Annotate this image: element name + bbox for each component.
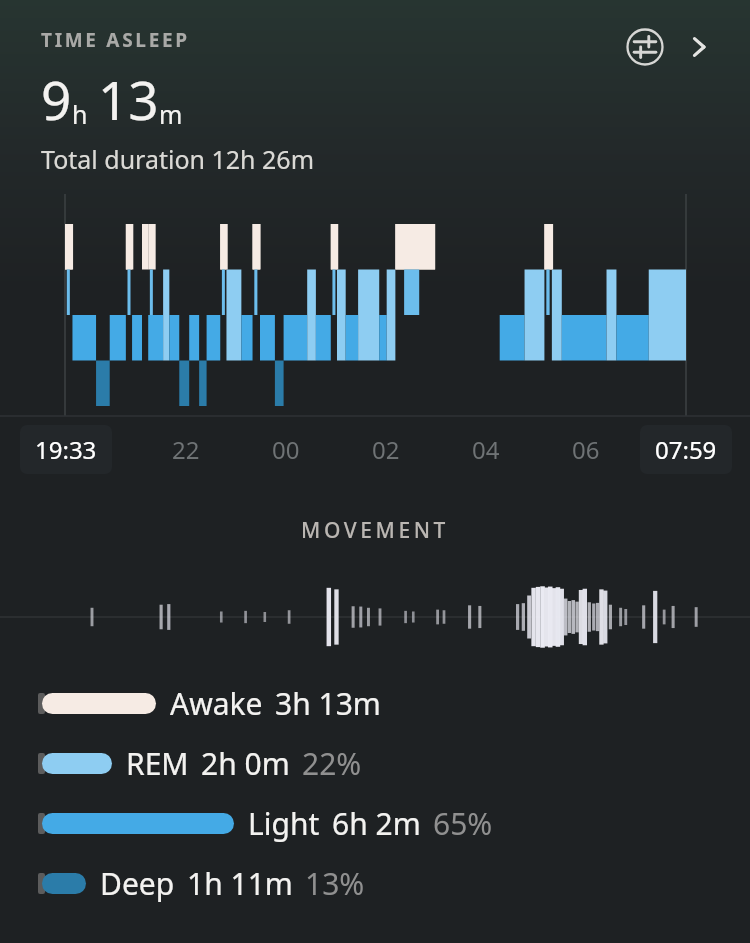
button[interactable]: Light	[38, 803, 750, 844]
staticText: TIME ASLEEP	[41, 27, 190, 53]
staticText: 65%	[433, 803, 493, 844]
button[interactable]: REM	[38, 743, 750, 784]
staticText: 2h 0m	[201, 743, 290, 784]
staticText: 07:59	[655, 433, 717, 466]
staticText: 00	[272, 433, 300, 466]
staticText: 19:33	[35, 433, 97, 466]
button[interactable]: Open sleep details	[674, 22, 724, 72]
staticText: REM	[126, 743, 189, 784]
staticText: Light	[248, 803, 320, 844]
staticText: 06	[572, 433, 600, 466]
staticText: 13%	[305, 863, 365, 904]
staticText: h	[72, 97, 88, 131]
staticText: 04	[472, 433, 500, 466]
button[interactable]: Sleep settings	[620, 22, 670, 72]
staticText: 1h 11m	[187, 863, 293, 904]
staticText: 02	[372, 433, 400, 466]
button[interactable]: Awake	[38, 683, 750, 724]
staticText: 13	[98, 63, 159, 135]
button[interactable]: Deep	[38, 863, 750, 904]
staticText: Awake	[170, 683, 263, 724]
staticText: Total duration 12h 26m	[41, 142, 315, 176]
staticText: 22%	[302, 743, 362, 784]
staticText: 6h 2m	[332, 803, 421, 844]
staticText: 3h 13m	[275, 683, 381, 724]
staticText: 22	[172, 433, 200, 466]
staticText: Deep	[100, 863, 175, 904]
staticText: MOVEMENT	[301, 516, 450, 545]
staticText: 9	[41, 63, 72, 135]
staticText: m	[159, 97, 183, 131]
